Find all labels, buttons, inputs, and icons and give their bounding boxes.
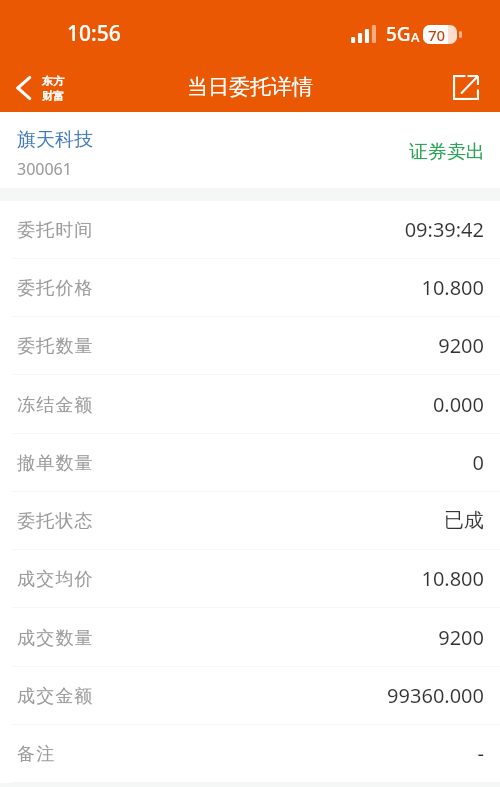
staticText: 证券卖出 [409,140,485,164]
staticText: 撤单数量 [17,452,94,475]
staticText: 当日委托详情 [187,74,313,100]
button[interactable]: 成交均价 [0,550,500,608]
button[interactable]: 冻结金额 [0,375,500,434]
staticText: 70 [428,25,446,44]
staticText: 已成 [102,508,484,533]
staticText: - [64,740,484,767]
button[interactable]: 委托时间 [0,201,500,259]
staticText: 成交均价 [17,568,94,591]
staticText: 0 [102,449,484,476]
staticText: 旗天科技 [17,128,93,152]
button[interactable]: 委托数量 [0,317,500,375]
staticText: 成交数量 [17,627,94,650]
button[interactable]: 成交数量 [0,608,500,667]
staticText: 10.800 [102,565,484,592]
button[interactable]: 委托状态 [0,492,500,550]
staticText: 财富 [42,89,64,103]
staticText: 10:56 [67,19,121,48]
staticText: 99360.000 [102,682,484,709]
button[interactable]: 委托价格 [0,259,500,317]
staticText: 10.800 [102,274,484,301]
button[interactable]: 成交金额 [0,667,500,725]
staticText: 委托状态 [17,510,94,533]
staticText: 9200 [102,332,484,359]
staticText: 5G [386,21,411,47]
staticText: 委托数量 [17,335,94,358]
staticText: 东方 [42,74,64,88]
staticText: 备注 [17,743,56,766]
staticText: 0.000 [102,391,484,418]
button[interactable]: 备注 [0,725,500,783]
staticText: A [411,28,420,46]
staticText: 委托时间 [17,219,94,242]
staticText: 9200 [102,624,484,651]
staticText: 成交金额 [17,685,94,708]
staticText: 300061 [17,158,72,180]
button[interactable]: 返回 东方财富 [10,66,70,103]
staticText: 09:39:42 [102,216,484,243]
button[interactable]: Share [447,66,485,104]
button[interactable]: 撤单数量 [0,434,500,492]
staticText: 委托价格 [17,277,94,300]
staticText: 冻结金额 [17,394,94,417]
